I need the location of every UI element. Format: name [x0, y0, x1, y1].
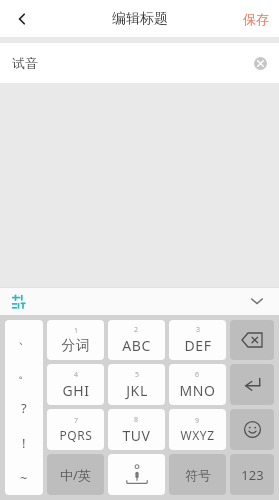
staticText: 9 [195, 416, 200, 426]
button[interactable]: 5 [108, 364, 165, 405]
staticText: ! [22, 434, 26, 452]
staticText: 2 [134, 325, 139, 335]
button[interactable]: ~ [5, 460, 43, 495]
button[interactable]: 符号 [169, 454, 226, 495]
button[interactable]: 、 [5, 320, 43, 355]
button[interactable]: Enter [230, 364, 274, 405]
staticText: 1 [74, 326, 79, 336]
button[interactable]: Clear [249, 52, 271, 74]
button[interactable]: Space / Voice input [108, 454, 165, 495]
staticText: 5 [135, 370, 140, 380]
staticText: 符号 [185, 467, 211, 483]
staticText: JKL [126, 381, 148, 400]
button[interactable]: 中/英 [47, 454, 104, 495]
button[interactable]: 。 [5, 355, 43, 390]
button[interactable]: 3 [169, 320, 226, 360]
staticText: DEF [184, 336, 212, 355]
staticText: TUV [122, 426, 151, 445]
staticText: 4 [74, 370, 79, 380]
button[interactable]: 4 [47, 364, 104, 405]
button[interactable]: 8 [108, 409, 165, 450]
staticText: ABC [122, 336, 151, 355]
button[interactable]: 保存 [243, 11, 269, 27]
staticText: 、 [18, 330, 31, 346]
staticText: 8 [134, 415, 139, 425]
staticText: WXYZ [180, 427, 215, 443]
staticText: 。 [18, 365, 31, 381]
button[interactable]: Backspace [230, 320, 274, 360]
button[interactable]: 9 [169, 409, 226, 450]
staticText: ~ [20, 469, 28, 487]
staticText: 3 [196, 325, 201, 335]
staticText: MNO [179, 381, 216, 400]
staticText: 编辑标题 [112, 10, 168, 28]
staticText: 保存 [243, 11, 269, 27]
button[interactable]: 123 [230, 454, 274, 495]
button[interactable]: Input method [8, 291, 28, 311]
staticText: 中/英 [60, 466, 91, 484]
staticText: 分词 [61, 337, 91, 355]
staticText: 试音 [12, 55, 38, 71]
staticText: ? [21, 399, 27, 417]
button[interactable]: Emoji [230, 409, 274, 450]
button[interactable]: 2 [108, 320, 165, 360]
button[interactable]: Hide keyboard [245, 289, 269, 313]
button[interactable]: ? [5, 390, 43, 425]
staticText: PQRS [59, 427, 93, 443]
staticText: GHI [62, 381, 90, 400]
staticText: 6 [195, 370, 200, 380]
button[interactable]: ! [5, 425, 43, 460]
staticText: 7 [74, 416, 79, 426]
button[interactable]: 7 [47, 409, 104, 450]
staticText: 123 [241, 466, 264, 484]
button[interactable]: 1 [47, 320, 104, 360]
button[interactable]: 6 [169, 364, 226, 405]
button[interactable]: Back [0, 0, 44, 37]
